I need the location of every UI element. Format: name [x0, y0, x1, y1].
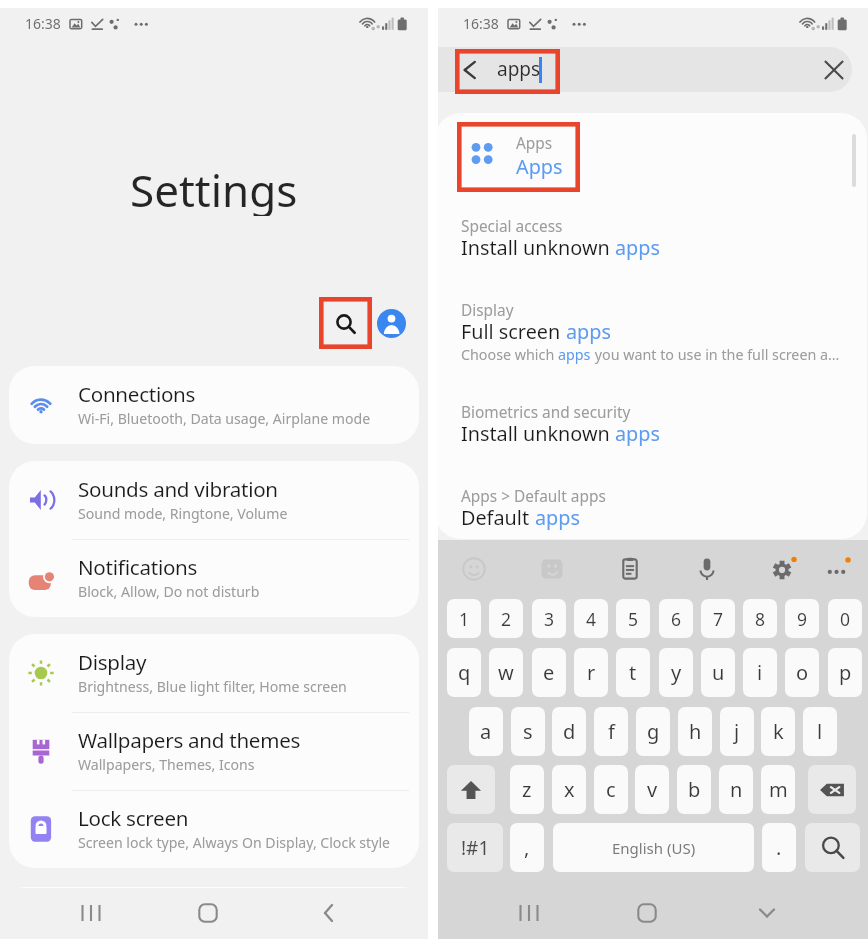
- staticText: !#1: [461, 835, 490, 861]
- staticText: t: [629, 659, 637, 686]
- button[interactable]: 2: [489, 599, 523, 638]
- staticText: Install unknown: [461, 420, 615, 447]
- button[interactable]: Account: [377, 309, 406, 338]
- button[interactable]: Connections: [9, 366, 419, 444]
- button[interactable]: Sounds and vibration: [9, 461, 419, 539]
- button[interactable]: Apps > Default apps: [438, 486, 867, 539]
- staticText: w: [498, 659, 514, 686]
- button[interactable]: Comma: [510, 823, 544, 872]
- staticText: i: [757, 659, 763, 686]
- button[interactable]: Backspace: [808, 765, 856, 814]
- button[interactable]: d: [552, 707, 586, 756]
- staticText: you want to use in the full screen a…: [591, 345, 840, 364]
- button[interactable]: z: [510, 765, 544, 814]
- button[interactable]: m: [761, 765, 795, 814]
- button[interactable]: 9: [785, 599, 819, 638]
- staticText: 2: [501, 607, 512, 631]
- button[interactable]: Voice input: [688, 550, 726, 588]
- button[interactable]: Symbols: [447, 823, 503, 872]
- staticText: Default: [461, 504, 535, 531]
- staticText: r: [587, 659, 596, 686]
- button[interactable]: 0: [828, 599, 862, 638]
- staticText: Screen lock type, Always On Display, Clo…: [78, 833, 390, 852]
- button[interactable]: u: [701, 648, 735, 697]
- staticText: g: [647, 718, 660, 745]
- button[interactable]: Home: [625, 891, 669, 935]
- staticText: Wi-Fi, Bluetooth, Data usage, Airplane m…: [78, 409, 371, 428]
- button[interactable]: Apps: [438, 113, 867, 203]
- staticText: Full screen: [461, 318, 566, 345]
- button[interactable]: t: [616, 648, 650, 697]
- staticText: 1: [459, 607, 470, 631]
- button[interactable]: s: [511, 707, 545, 756]
- button[interactable]: n: [719, 765, 753, 814]
- button[interactable]: Special access: [438, 216, 867, 274]
- staticText: Install unknown: [461, 234, 615, 261]
- button[interactable]: x: [552, 765, 586, 814]
- staticText: 0: [840, 607, 851, 631]
- button[interactable]: Period: [762, 823, 796, 872]
- staticText: h: [689, 718, 702, 745]
- button[interactable]: c: [594, 765, 628, 814]
- staticText: m: [769, 776, 788, 803]
- button[interactable]: w: [489, 648, 523, 697]
- button[interactable]: Lock screen: [9, 790, 419, 868]
- button[interactable]: Biometrics and security: [438, 402, 867, 460]
- button[interactable]: Recent apps: [507, 891, 551, 935]
- button[interactable]: Display: [9, 634, 419, 712]
- button[interactable]: j: [720, 707, 754, 756]
- button[interactable]: More options: [818, 550, 856, 588]
- staticText: 16:38: [463, 14, 499, 33]
- staticText: c: [606, 776, 616, 803]
- button[interactable]: f: [594, 707, 628, 756]
- button[interactable]: Clipboard: [611, 550, 649, 588]
- button[interactable]: Notifications: [9, 539, 419, 617]
- staticText: apps: [558, 345, 591, 364]
- button[interactable]: e: [532, 648, 566, 697]
- button[interactable]: Recent apps: [69, 891, 113, 935]
- button[interactable]: q: [447, 648, 481, 697]
- button[interactable]: 6: [659, 599, 693, 638]
- button[interactable]: l: [803, 707, 837, 756]
- button[interactable]: b: [677, 765, 711, 814]
- staticText: 7: [713, 607, 724, 631]
- staticText: Display: [461, 300, 514, 321]
- staticText: ,: [524, 834, 530, 861]
- button[interactable]: a: [469, 707, 503, 756]
- button[interactable]: v: [635, 765, 669, 814]
- button[interactable]: Settings: [764, 550, 802, 588]
- button[interactable]: 1: [447, 599, 481, 638]
- button[interactable]: Emoji: [455, 550, 493, 588]
- button[interactable]: Wallpapers and themes: [9, 712, 419, 790]
- button[interactable]: y: [659, 648, 693, 697]
- button[interactable]: p: [828, 648, 862, 697]
- button[interactable]: h: [678, 707, 712, 756]
- button[interactable]: i: [743, 648, 777, 697]
- button[interactable]: Clear search: [811, 47, 857, 93]
- button[interactable]: g: [636, 707, 670, 756]
- staticText: z: [522, 776, 532, 803]
- staticText: l: [817, 718, 823, 745]
- button[interactable]: 3: [532, 599, 566, 638]
- staticText: x: [564, 776, 575, 803]
- button[interactable]: 8: [743, 599, 777, 638]
- button[interactable]: 4: [574, 599, 608, 638]
- button[interactable]: Back: [307, 891, 351, 935]
- button[interactable]: Shift: [447, 765, 495, 814]
- staticText: s: [523, 718, 533, 745]
- button[interactable]: o: [785, 648, 819, 697]
- button[interactable]: 5: [616, 599, 650, 638]
- button[interactable]: Back: [447, 47, 493, 93]
- button[interactable]: Search: [320, 298, 368, 346]
- button[interactable]: Hide keyboard: [745, 891, 789, 935]
- button[interactable]: Stickers: [533, 550, 571, 588]
- button[interactable]: Home: [186, 891, 230, 935]
- button[interactable]: Display: [438, 300, 867, 380]
- button[interactable]: Search: [805, 823, 860, 872]
- button[interactable]: r: [574, 648, 608, 697]
- staticText: Apps: [516, 153, 563, 180]
- staticText: apps: [535, 504, 580, 531]
- button[interactable]: Space: [553, 823, 754, 872]
- button[interactable]: 7: [701, 599, 735, 638]
- button[interactable]: k: [761, 707, 795, 756]
